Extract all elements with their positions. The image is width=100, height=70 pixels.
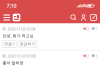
staticText: 1 xyxy=(96,53,98,59)
staticText: 안녕, 회가 먹고싶 xyxy=(2,33,33,38)
staticText: 1 xyxy=(96,26,98,31)
staticText: 공감하기 xyxy=(19,41,35,46)
staticText: 1 xyxy=(13,41,15,47)
staticText: 댓글 xyxy=(4,41,12,46)
button[interactable]: Menu xyxy=(2,12,11,23)
staticText: 2 xyxy=(87,53,89,59)
button[interactable]: 공감하기 xyxy=(18,41,37,47)
button[interactable]: Write xyxy=(88,12,98,23)
button[interactable]: 2020.11.02 07:08 xyxy=(0,23,100,50)
staticText: 2 xyxy=(87,26,89,31)
button[interactable]: Search xyxy=(68,12,78,23)
button[interactable]: My page xyxy=(78,12,88,23)
button[interactable]: 댓글 xyxy=(2,41,16,47)
staticText: 7:10 xyxy=(6,2,16,9)
button[interactable]: Cafe home xyxy=(11,12,21,23)
staticText: 2020.11.02 07:08 xyxy=(7,26,35,31)
staticText: 2020.11.02 07:08 xyxy=(7,53,35,59)
button[interactable]: 2020.11.02 07:08 xyxy=(0,51,100,68)
staticText: 좋아 말하면 xyxy=(2,60,23,65)
